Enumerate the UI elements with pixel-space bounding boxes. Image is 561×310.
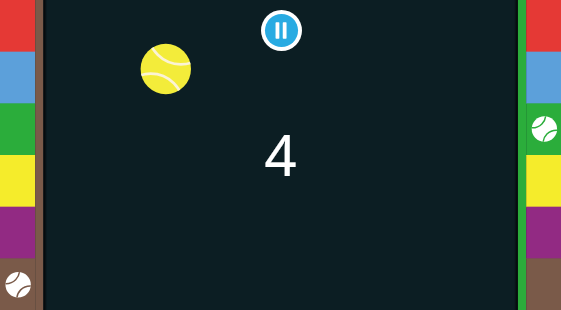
staticText: 4 (0, 116, 561, 310)
button[interactable]: Pause (261, 10, 302, 51)
